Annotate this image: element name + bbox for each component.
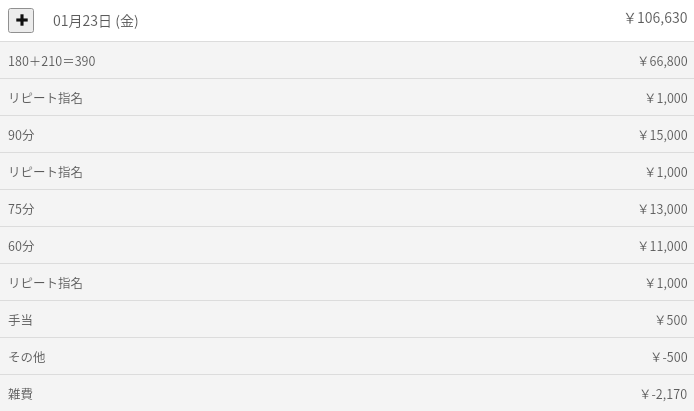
- staticText: ￥13,000: [637, 199, 688, 217]
- staticText: 雑費: [8, 384, 34, 402]
- staticText: 90分: [8, 125, 35, 143]
- staticText: ￥1,000: [644, 88, 688, 106]
- button[interactable]: リピート指名: [0, 264, 694, 300]
- staticText: 75分: [8, 199, 35, 217]
- button[interactable]: リピート指名: [0, 153, 694, 189]
- button[interactable]: Add entry: [8, 8, 34, 33]
- staticText: リピート指名: [8, 88, 84, 106]
- staticText: その他: [8, 347, 46, 365]
- staticText: リピート指名: [8, 162, 84, 180]
- staticText: ￥500: [654, 310, 688, 328]
- button[interactable]: 90分: [0, 116, 694, 152]
- button[interactable]: リピート指名: [0, 79, 694, 115]
- button[interactable]: 雑費: [0, 375, 694, 411]
- staticText: 01月23日 (金): [53, 10, 139, 30]
- button[interactable]: 60分: [0, 227, 694, 263]
- button[interactable]: 180＋210＝390: [0, 42, 694, 78]
- staticText: ￥1,000: [644, 162, 688, 180]
- button[interactable]: 手当: [0, 301, 694, 337]
- staticText: ￥-2,170: [639, 384, 688, 402]
- staticText: ￥15,000: [637, 125, 688, 143]
- button[interactable]: その他: [0, 338, 694, 374]
- staticText: ￥-500: [650, 347, 688, 365]
- staticText: ￥106,630: [623, 7, 688, 27]
- staticText: 手当: [8, 310, 34, 328]
- staticText: ￥11,000: [637, 236, 688, 254]
- staticText: ￥1,000: [644, 273, 688, 291]
- staticText: リピート指名: [8, 273, 84, 291]
- staticText: 60分: [8, 236, 35, 254]
- staticText: 180＋210＝390: [8, 51, 96, 69]
- staticText: ￥66,800: [637, 51, 688, 69]
- button[interactable]: 75分: [0, 190, 694, 226]
